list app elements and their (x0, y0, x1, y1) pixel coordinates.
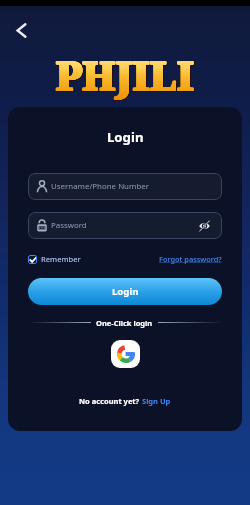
staticText: PHJILI (55, 49, 194, 103)
staticText: Login (107, 128, 144, 146)
staticText: PHJILI (55, 47, 194, 101)
staticText: PHJILI (57, 47, 196, 101)
staticText: PHJILI (55, 48, 194, 102)
staticText: PHJILI (57, 47, 196, 101)
staticText: PHJILI (55, 49, 194, 103)
staticText: PHJILI (57, 49, 196, 103)
staticText: PHJILI (56, 49, 195, 103)
button[interactable]: Username/Phone Number (28, 173, 222, 200)
staticText: PHJILI (55, 49, 194, 103)
staticText: Username/Phone Number (51, 181, 149, 192)
button[interactable]: Login (28, 278, 222, 305)
staticText: Login (112, 285, 139, 298)
staticText: PHJILI (57, 48, 196, 102)
button[interactable]: Back (8, 19, 34, 41)
staticText: PHJILI (55, 49, 194, 103)
button[interactable]: Forgot password? (159, 254, 222, 264)
staticText: PHJILI (55, 47, 194, 101)
staticText: PHJILI (55, 47, 194, 101)
staticText: PHJILI (56, 48, 195, 102)
staticText: PHJILI (56, 47, 195, 101)
staticText: PHJILI (56, 47, 195, 101)
staticText: PHJILI (55, 48, 194, 102)
staticText: PHJILI (56, 47, 195, 101)
staticText: Remember (41, 254, 81, 264)
staticText: PHJILI (57, 47, 196, 101)
staticText: PHJILI (55, 48, 194, 102)
staticText: PHJILI (56, 48, 195, 102)
staticText: PHJILI (57, 49, 196, 103)
staticText: PHJILI (56, 49, 195, 103)
staticText: PHJILI (56, 48, 195, 102)
staticText: PHJILI (57, 47, 196, 101)
button[interactable]: Sign Up (142, 396, 171, 406)
button[interactable]: Remember (28, 254, 81, 264)
staticText: PHJILI (55, 47, 194, 101)
staticText: PHJILI (56, 48, 195, 102)
staticText: PHJILI (57, 49, 196, 103)
staticText: PHJILI (56, 47, 195, 101)
staticText: PHJILI (55, 48, 194, 102)
staticText: PHJILI (57, 48, 196, 102)
staticText: PHJILI (55, 47, 194, 101)
staticText: No account yet? (79, 396, 142, 406)
staticText: Password (51, 220, 87, 231)
staticText: PHJILI (57, 49, 196, 103)
staticText: PHJILI (56, 48, 195, 102)
staticText: One-Click login (96, 318, 153, 328)
button[interactable]: Sign in with Google (111, 340, 140, 368)
button[interactable]: Password (28, 212, 222, 239)
